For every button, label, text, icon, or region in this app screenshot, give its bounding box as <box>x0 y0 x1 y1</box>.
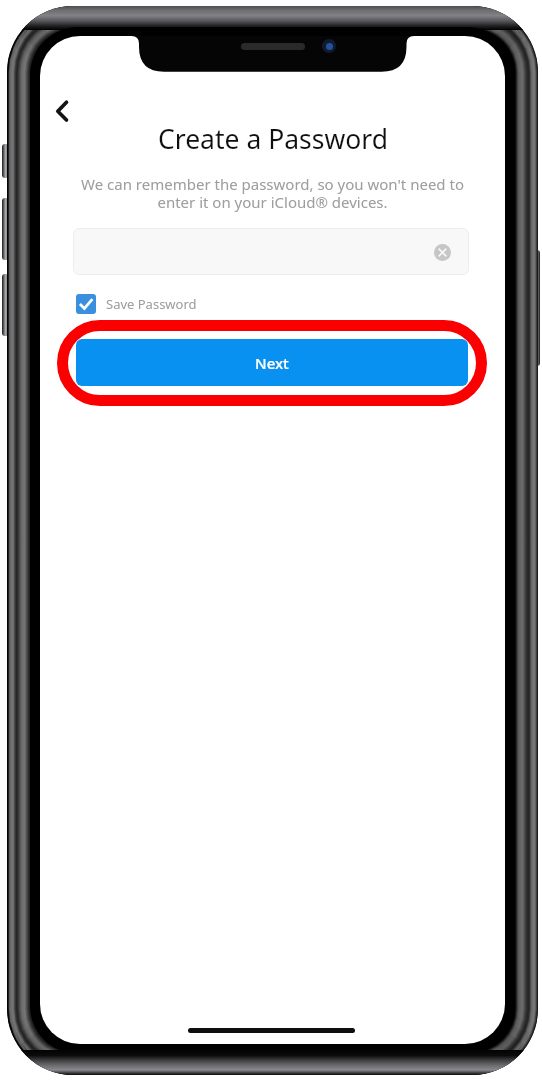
staticText: We can remember the password, so you won… <box>81 174 464 213</box>
button[interactable]: Back <box>40 89 84 133</box>
button[interactable]: Clear text <box>429 239 455 265</box>
button[interactable]: Save Password <box>76 291 197 316</box>
staticText: Create a Password <box>158 121 388 157</box>
staticText: Save Password <box>106 295 197 313</box>
staticText: Next <box>255 353 289 373</box>
button[interactable] <box>73 228 469 275</box>
button[interactable]: Next <box>76 339 468 386</box>
